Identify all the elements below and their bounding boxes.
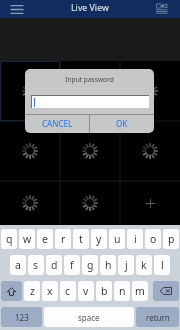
button[interactable]: q (1, 229, 17, 249)
button[interactable]: 123 (1, 307, 42, 327)
button[interactable]: t (73, 229, 89, 249)
staticText: m (135, 284, 145, 298)
staticText: space (78, 312, 100, 323)
staticText: y (96, 232, 102, 246)
button[interactable]: i (127, 229, 143, 249)
button[interactable]: b (96, 281, 112, 301)
staticText: r (61, 232, 66, 246)
staticText: z (30, 284, 35, 298)
button[interactable]: o (145, 229, 161, 249)
button[interactable] (60, 61, 120, 121)
staticText: s (33, 258, 39, 272)
button[interactable]: f (64, 255, 80, 275)
button[interactable]: e (37, 229, 53, 249)
staticText: u (114, 232, 121, 246)
staticText: CANCEL (42, 118, 73, 129)
staticText: e (42, 232, 48, 246)
button[interactable]: k (136, 255, 152, 275)
button[interactable] (0, 61, 60, 121)
button[interactable]: z (24, 281, 40, 301)
button[interactable]: w (19, 229, 35, 249)
button[interactable]: c (60, 281, 76, 301)
staticText: x (47, 284, 53, 298)
staticText: Live View (71, 2, 109, 14)
button[interactable] (60, 181, 120, 225)
button[interactable]: s (28, 255, 44, 275)
staticText: Input password (25, 75, 154, 84)
button[interactable]: y (91, 229, 107, 249)
button[interactable]: r (55, 229, 71, 249)
staticText: b (101, 284, 108, 298)
button[interactable]: d (46, 255, 62, 275)
staticText: w (23, 232, 32, 246)
button[interactable]: Menu (0, 0, 28, 18)
button[interactable]: p (163, 229, 179, 249)
staticText: p (168, 232, 175, 246)
staticText: g (87, 258, 94, 272)
button[interactable]: Shift (1, 281, 22, 301)
button[interactable] (31, 95, 149, 108)
button[interactable]: a (10, 255, 26, 275)
staticText: t (79, 232, 83, 246)
staticText: return (146, 312, 170, 323)
button[interactable]: Playback (152, 0, 180, 18)
button[interactable]: g (82, 255, 98, 275)
staticText: k (141, 258, 147, 272)
button[interactable]: CANCEL (25, 114, 89, 133)
staticText: n (119, 284, 126, 298)
button[interactable]: n (114, 281, 130, 301)
button[interactable]: l (154, 255, 170, 275)
button[interactable] (60, 121, 120, 181)
staticText: 123 (15, 312, 29, 323)
button[interactable]: h (100, 255, 116, 275)
button[interactable] (0, 121, 60, 181)
staticText: v (83, 284, 89, 298)
staticText: j (125, 258, 128, 272)
button[interactable]: Backspace (153, 281, 179, 301)
staticText: o (150, 232, 157, 246)
button[interactable] (0, 181, 60, 225)
button[interactable]: x (42, 281, 58, 301)
staticText: f (70, 258, 74, 272)
staticText: c (65, 284, 71, 298)
button[interactable] (120, 61, 180, 121)
staticText: h (105, 258, 112, 272)
button[interactable]: OK (90, 114, 154, 133)
other: Add camera (146, 199, 155, 208)
button[interactable]: return (136, 307, 179, 327)
staticText: a (15, 258, 21, 272)
button[interactable]: Add camera (120, 181, 180, 225)
staticText: q (6, 232, 13, 246)
button[interactable]: m (132, 281, 148, 301)
button[interactable]: u (109, 229, 125, 249)
button[interactable]: v (78, 281, 94, 301)
staticText: OK (116, 118, 128, 129)
button[interactable] (120, 121, 180, 181)
button[interactable]: space (44, 307, 134, 327)
staticText: l (161, 258, 164, 272)
staticText: d (51, 258, 58, 272)
button[interactable]: j (118, 255, 134, 275)
staticText: i (134, 232, 137, 246)
